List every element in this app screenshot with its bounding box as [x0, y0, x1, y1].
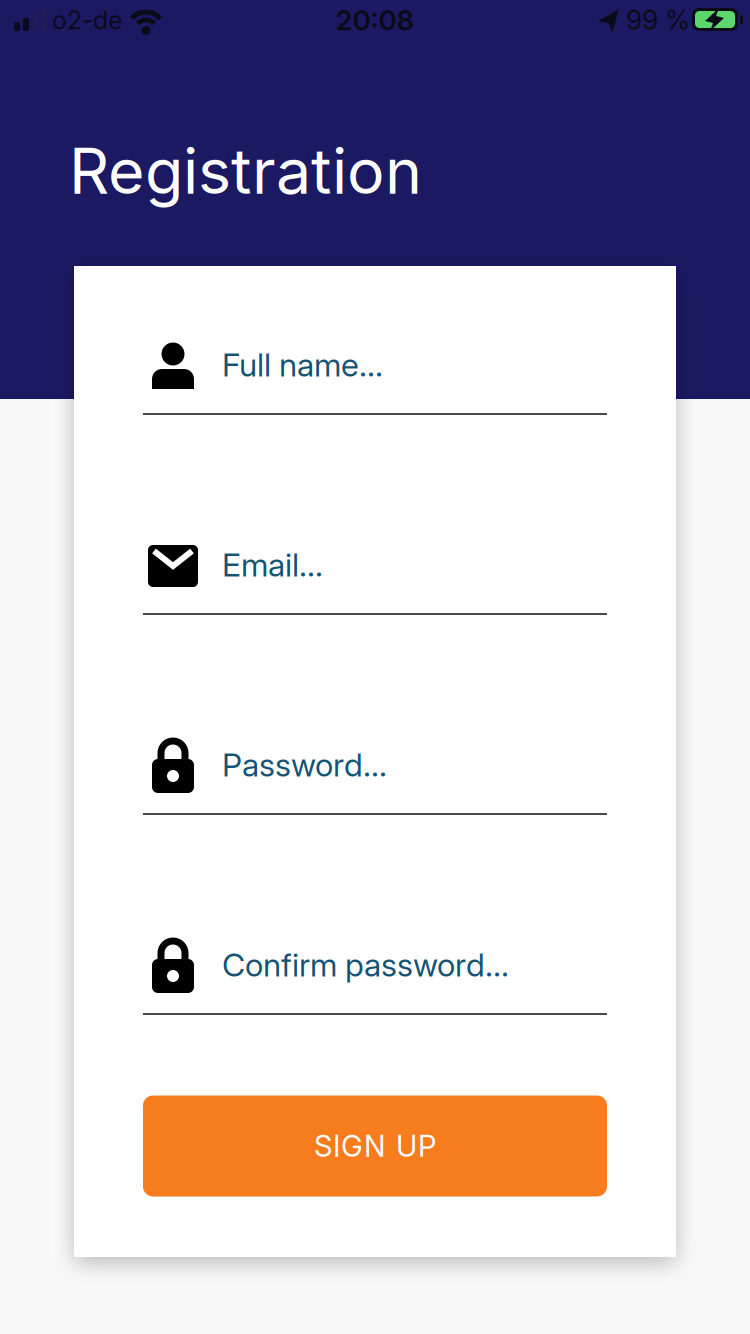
staticText: 99 % [626, 4, 690, 36]
staticText: Full name... [222, 346, 383, 384]
staticText: o2-de [52, 5, 122, 35]
button[interactable]: SIGN UP [143, 1095, 607, 1196]
button[interactable]: Email... [143, 516, 607, 616]
button[interactable]: Confirm password... [143, 916, 607, 1016]
staticText: Confirm password... [222, 946, 509, 984]
button[interactable]: Password... [143, 716, 607, 816]
button[interactable]: Full name... [143, 316, 607, 416]
staticText: Registration [69, 134, 422, 208]
staticText: 20:08 [335, 3, 414, 36]
staticText: Password... [222, 746, 387, 784]
staticText: SIGN UP [314, 1129, 436, 1163]
staticText: Email... [222, 546, 323, 584]
